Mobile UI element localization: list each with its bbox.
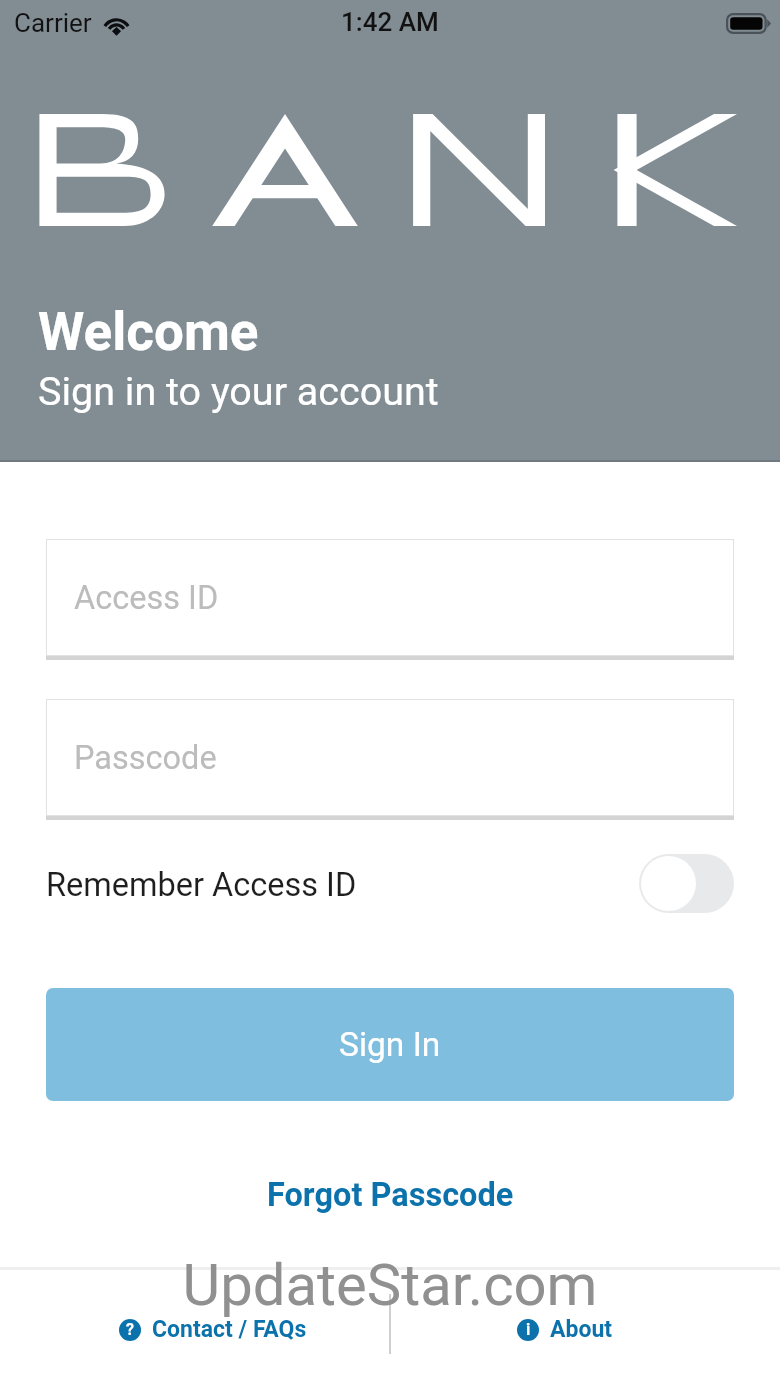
button[interactable]: Passcode <box>46 699 734 816</box>
staticText: 1:42 AM <box>341 7 439 37</box>
button[interactable]: Sign In <box>46 988 734 1101</box>
staticText: Sign In <box>339 1025 441 1064</box>
staticText: Remember Access ID <box>46 866 357 904</box>
staticText: Contact / FAQs <box>152 1316 307 1343</box>
button[interactable]: Forgot Passcode <box>247 1164 534 1226</box>
button[interactable]: Remember Access ID <box>46 840 734 930</box>
staticText: UpdateStar.com <box>0 1251 780 1319</box>
button[interactable]: Remember Access ID toggle <box>639 854 734 913</box>
staticText: i <box>526 1320 531 1339</box>
staticText: Welcome <box>38 301 259 363</box>
button[interactable]: i <box>513 1312 617 1347</box>
button[interactable]: ? <box>115 1312 311 1347</box>
staticText: About <box>550 1316 613 1343</box>
button[interactable]: Access ID <box>46 539 734 656</box>
staticText: Forgot Passcode <box>267 1176 514 1214</box>
staticText: Access ID <box>74 579 219 617</box>
staticText: ? <box>126 1320 134 1339</box>
staticText: Passcode <box>74 739 217 777</box>
staticText: Carrier <box>14 8 92 38</box>
staticText: Sign in to your account <box>38 368 439 414</box>
